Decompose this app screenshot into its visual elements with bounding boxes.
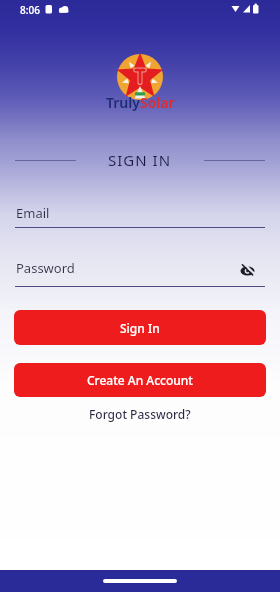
button[interactable]: Sign In — [14, 310, 266, 345]
staticText: Solar — [140, 93, 175, 112]
staticText: Email — [16, 204, 50, 222]
staticText: Password — [16, 259, 75, 277]
button[interactable]: Email — [0, 204, 280, 222]
button[interactable]: Forgot Password? — [89, 406, 191, 422]
staticText: 8:06 — [20, 3, 40, 17]
staticText: Sign In — [120, 320, 160, 336]
button[interactable] — [239, 262, 256, 279]
button[interactable]: Password — [0, 259, 280, 279]
staticText: SIGN IN — [108, 150, 172, 170]
staticText: Truly — [106, 93, 140, 112]
button[interactable]: Create An Account — [14, 363, 266, 397]
staticText: Create An Account — [87, 372, 193, 388]
